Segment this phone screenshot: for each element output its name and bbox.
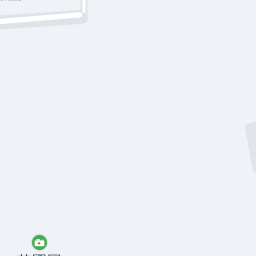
staticText: 苗圃园: [17, 252, 62, 256]
button[interactable]: 苗圃园: [29, 232, 49, 252]
staticText: 苗圃园路: [0, 0, 22, 16]
